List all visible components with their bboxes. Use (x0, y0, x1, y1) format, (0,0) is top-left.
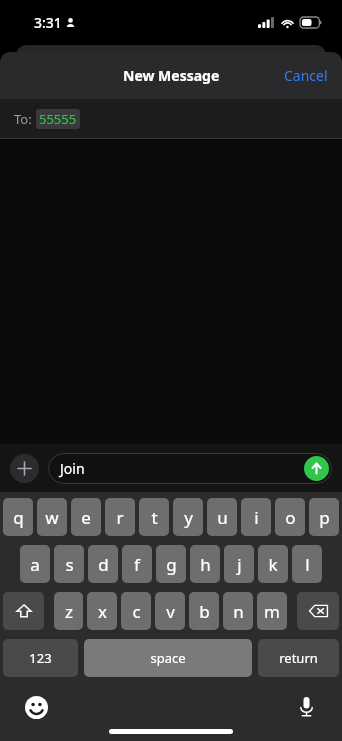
staticText: f (134, 553, 140, 576)
button[interactable]: Dictation (292, 693, 320, 721)
button[interactable]: w (37, 498, 67, 536)
staticText: q (13, 506, 24, 529)
button[interactable]: v (155, 592, 185, 630)
button[interactable]: s (54, 545, 84, 583)
staticText: Cancel (284, 66, 328, 85)
button[interactable]: o (275, 498, 305, 536)
button[interactable]: return (258, 639, 339, 677)
button[interactable]: g (156, 545, 186, 583)
staticText: k (268, 553, 278, 576)
staticText: e (81, 506, 91, 529)
staticText: o (285, 506, 296, 529)
button[interactable]: e (71, 498, 101, 536)
staticText: d (98, 553, 109, 576)
button[interactable]: z (54, 592, 83, 630)
staticText: n (233, 600, 244, 623)
button[interactable]: Shift (3, 592, 44, 630)
button[interactable]: b (189, 592, 219, 630)
staticText: x (98, 600, 107, 623)
button[interactable]: 123 (3, 639, 78, 677)
button[interactable]: Join (48, 453, 332, 484)
staticText: z (65, 600, 73, 623)
staticText: l (305, 553, 310, 576)
button[interactable]: u (207, 498, 237, 536)
button[interactable]: To: (0, 99, 342, 139)
button[interactable]: space (84, 639, 252, 677)
button[interactable]: h (190, 545, 220, 583)
button[interactable]: t (139, 498, 169, 536)
staticText: p (319, 506, 330, 529)
button[interactable]: i (241, 498, 271, 536)
button[interactable]: q (3, 498, 33, 536)
staticText: 3:31 (34, 13, 62, 32)
staticText: t (151, 506, 158, 529)
staticText: y (184, 506, 193, 529)
staticText: s (65, 553, 74, 576)
button[interactable]: p (309, 498, 339, 536)
staticText: Join (60, 459, 85, 478)
button[interactable]: k (258, 545, 288, 583)
button[interactable]: Add attachment (10, 454, 39, 483)
staticText: 123 (29, 649, 52, 667)
button[interactable]: f (122, 545, 152, 583)
button[interactable]: Send (304, 456, 329, 481)
staticText: b (199, 600, 210, 623)
button[interactable]: Backspace (297, 592, 339, 630)
button[interactable]: j (224, 545, 254, 583)
button[interactable]: Cancel (280, 60, 332, 91)
button[interactable]: r (105, 498, 135, 536)
staticText: New Message (123, 66, 220, 85)
button[interactable]: l (292, 545, 322, 583)
button[interactable]: a (20, 545, 50, 583)
staticText: h (200, 553, 211, 576)
button[interactable]: x (87, 592, 117, 630)
button[interactable]: n (223, 592, 253, 630)
staticText: 55555 (39, 110, 77, 128)
staticText: a (30, 553, 40, 576)
staticText: v (166, 600, 175, 623)
staticText: return (279, 649, 318, 667)
staticText: i (254, 506, 259, 529)
staticText: r (116, 506, 124, 529)
button[interactable]: c (121, 592, 151, 630)
staticText: g (166, 553, 177, 576)
staticText: j (237, 553, 242, 576)
staticText: u (217, 506, 228, 529)
staticText: w (45, 506, 59, 529)
staticText: m (264, 600, 280, 623)
staticText: c (132, 600, 141, 623)
button[interactable]: Emoji (22, 693, 50, 721)
staticText: space (150, 649, 186, 667)
button[interactable]: d (88, 545, 118, 583)
button[interactable]: y (173, 498, 203, 536)
staticText: To: (14, 110, 32, 128)
button[interactable]: m (257, 592, 287, 630)
